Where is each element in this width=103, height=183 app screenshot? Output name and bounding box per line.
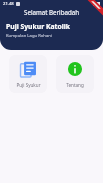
staticText: 21.48 (3, 1, 14, 7)
other: Tentang (67, 61, 83, 77)
staticText: Kumpulan Lagu Rohani (6, 33, 52, 39)
staticText: Tentang (66, 82, 84, 88)
button[interactable]: Tentang (56, 55, 94, 93)
other: Puji Syukur (20, 61, 37, 78)
staticText: Puji Syukur Katolik (6, 22, 70, 31)
staticText: Selamat Beribadah (24, 8, 80, 16)
button[interactable]: Puji Syukur (9, 55, 47, 93)
staticText: Puji Syukur (16, 82, 41, 88)
